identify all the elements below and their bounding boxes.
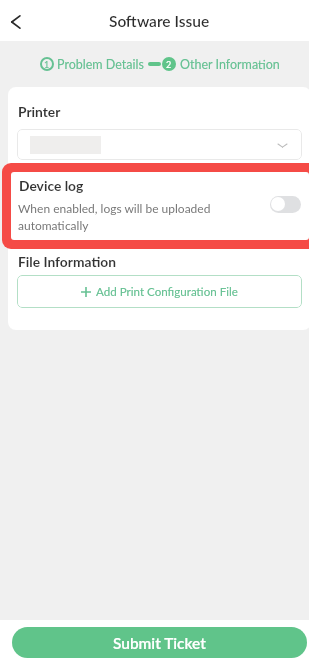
button[interactable]: Select printer	[17, 129, 302, 160]
staticText: Other Information	[180, 57, 280, 72]
staticText: Add Print Configuration File	[96, 285, 238, 299]
button[interactable]: Back	[0, 6, 32, 38]
button[interactable]: Submit Ticket	[12, 627, 307, 658]
staticText: 2	[166, 59, 172, 70]
staticText: Printer	[18, 103, 61, 120]
staticText: Submit Ticket	[113, 634, 206, 652]
button[interactable]: Add Print Configuration File	[17, 275, 302, 308]
staticText: When enabled, logs will be uploaded auto…	[18, 201, 218, 233]
staticText: File Information	[18, 253, 116, 270]
staticText: Problem Details	[57, 57, 144, 72]
button[interactable]: Toggle device log	[270, 196, 301, 213]
staticText: 1	[44, 59, 50, 70]
staticText: Software Issue	[109, 12, 210, 31]
staticText: Device log	[19, 177, 84, 194]
